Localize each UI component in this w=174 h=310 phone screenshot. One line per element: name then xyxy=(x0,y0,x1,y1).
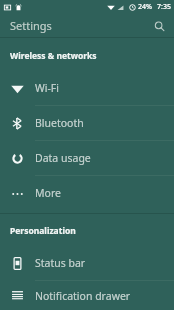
staticText: 24% xyxy=(138,2,152,12)
staticText: Wi-Fi xyxy=(35,81,60,95)
button[interactable]: Notification drawer xyxy=(0,281,174,310)
button[interactable]: Wi-Fi xyxy=(0,71,174,105)
staticText: Wireless & networks xyxy=(10,50,97,62)
button[interactable]: Search xyxy=(149,16,169,36)
button[interactable]: More xyxy=(0,176,174,210)
staticText: Settings xyxy=(10,18,52,33)
staticText: Bluetooth xyxy=(35,116,84,130)
staticText: Notification drawer xyxy=(35,289,131,303)
staticText: 7:35 xyxy=(157,2,171,12)
staticText: Status bar xyxy=(35,256,86,270)
staticText: Data usage xyxy=(35,151,91,165)
button[interactable]: Data usage xyxy=(0,141,174,175)
button[interactable]: Bluetooth xyxy=(0,106,174,140)
button[interactable]: Status bar xyxy=(0,246,174,280)
staticText: More xyxy=(35,186,61,200)
staticText: Personalization xyxy=(10,225,76,237)
